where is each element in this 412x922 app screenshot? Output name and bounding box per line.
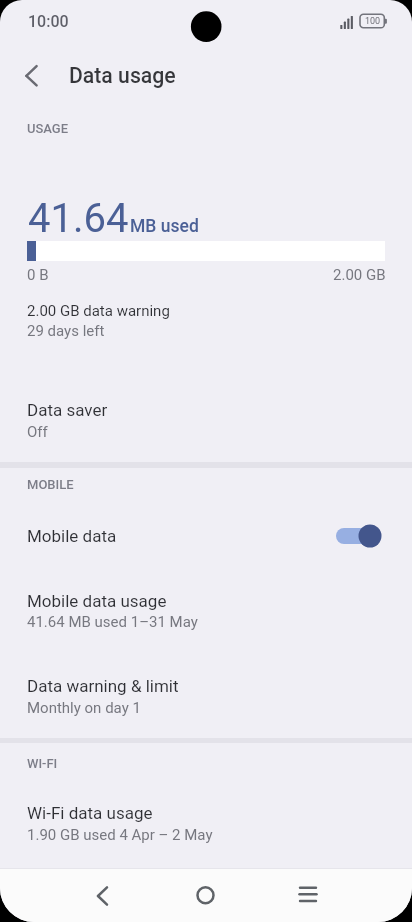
staticText: 100 (365, 16, 381, 27)
staticText: Mobile data (27, 526, 117, 546)
staticText: 2.00 GB (333, 266, 386, 284)
button[interactable] (0, 668, 412, 724)
staticText: Off (27, 423, 48, 441)
staticText: USAGE (27, 121, 69, 136)
staticText: WI-FI (27, 756, 58, 771)
staticText: 1.90 GB used 4 Apr – 2 May (27, 826, 213, 844)
button[interactable] (0, 392, 412, 448)
staticText: Data warning & limit (27, 676, 179, 696)
button[interactable]: Back (78, 868, 126, 922)
staticText: Mobile data usage (27, 591, 167, 611)
staticText: Wi-Fi data usage (27, 803, 153, 823)
staticText: Data usage (69, 63, 176, 88)
staticText: MB used (130, 216, 199, 237)
staticText: 41.64 (28, 195, 129, 242)
staticText: MOBILE (27, 477, 74, 492)
staticText: 10:00 (28, 12, 69, 31)
staticText: 29 days left (27, 322, 105, 340)
staticText: Monthly on day 1 (27, 699, 141, 717)
button[interactable] (0, 582, 412, 638)
button[interactable]: Home (182, 868, 230, 922)
button[interactable] (0, 293, 412, 345)
button[interactable] (0, 512, 412, 560)
button[interactable]: Navigate up (7, 51, 55, 99)
staticText: 0 B (27, 266, 49, 284)
button[interactable]: Recent apps (284, 868, 332, 922)
staticText: 41.64 MB used 1–31 May (27, 613, 198, 631)
staticText: Data saver (27, 400, 108, 420)
staticText: 2.00 GB data warning (27, 302, 170, 320)
button[interactable] (0, 795, 412, 851)
